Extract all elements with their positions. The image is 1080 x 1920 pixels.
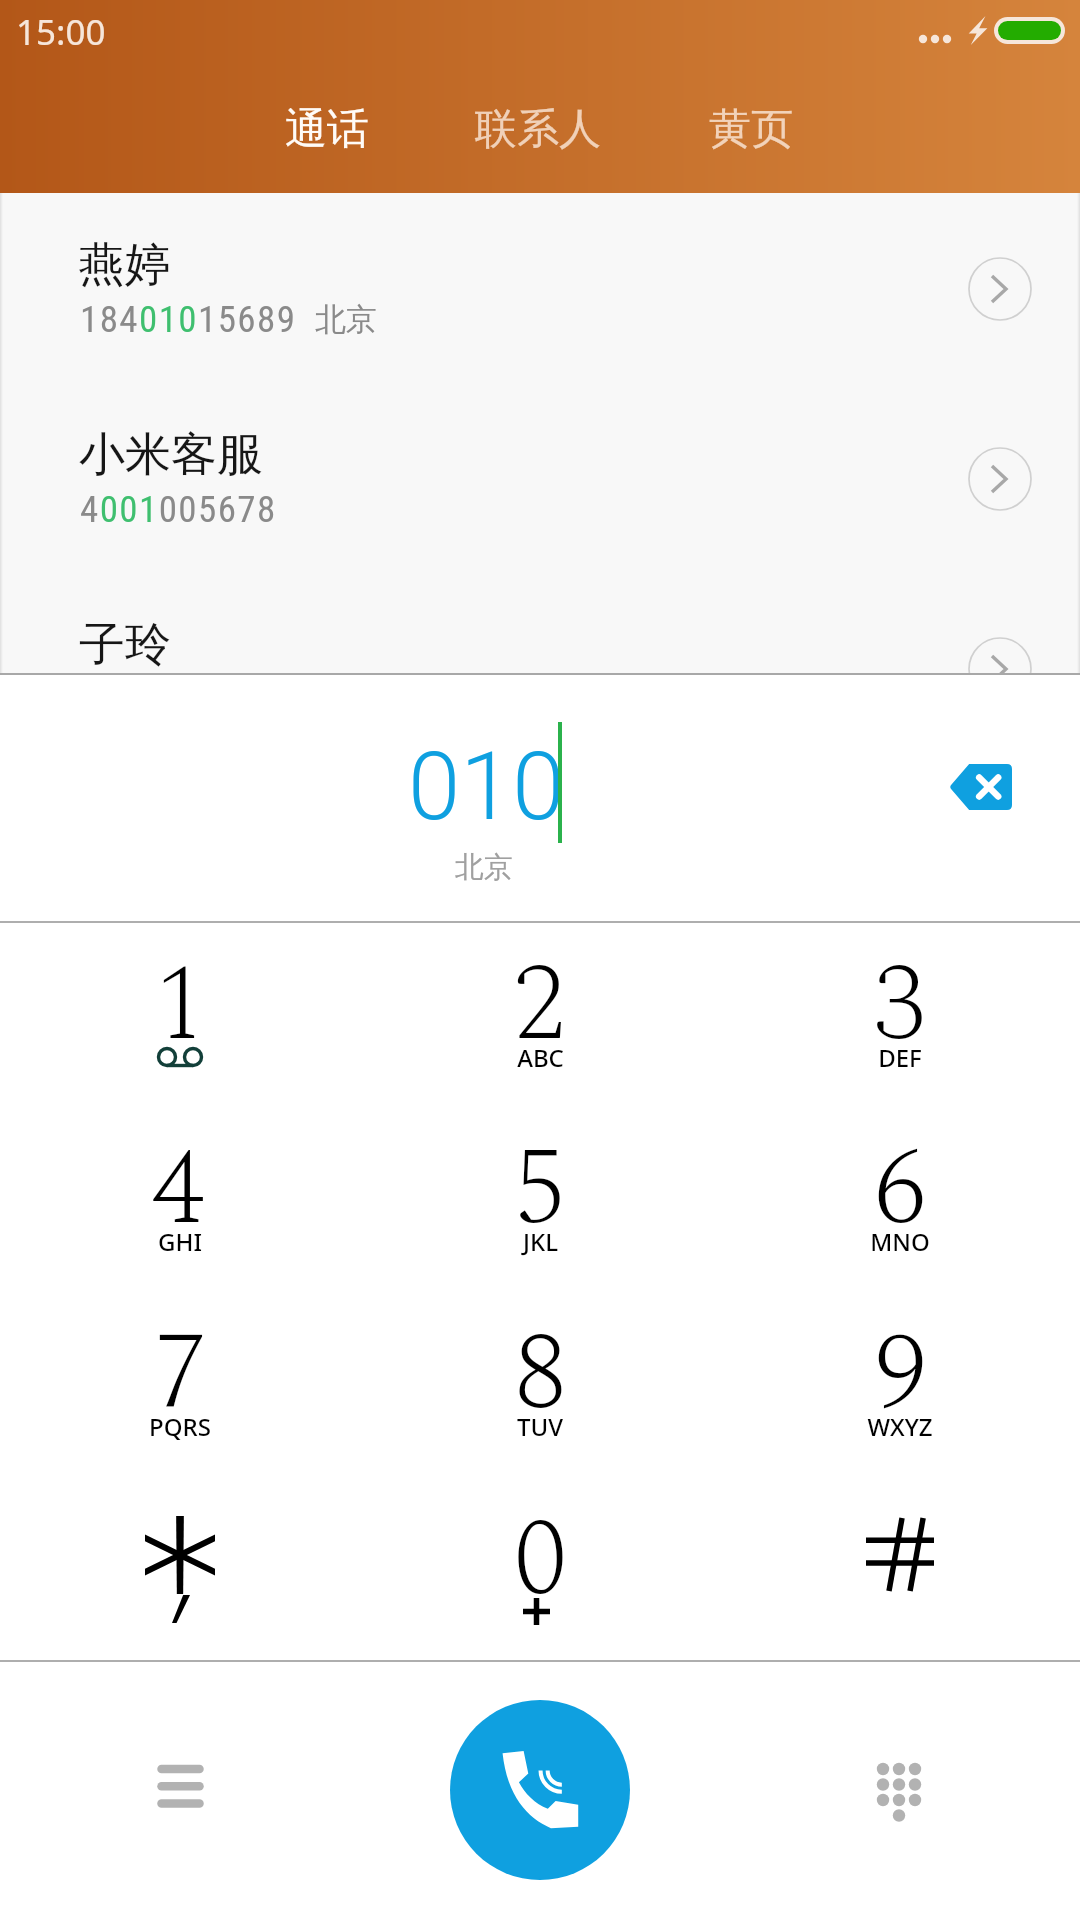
staticText: 黄页: [709, 103, 793, 156]
staticText: 4: [153, 1107, 208, 1262]
staticText: 7: [153, 1292, 208, 1447]
button[interactable]: Key 6: [720, 1091, 1080, 1276]
staticText: ABC: [517, 1041, 564, 1074]
button[interactable]: Key #: [720, 1462, 1080, 1647]
staticText: PQRS: [149, 1410, 211, 1443]
staticText: 4001005678: [80, 488, 277, 531]
button[interactable]: Key 2: [360, 907, 720, 1092]
button[interactable]: Key *: [0, 1462, 360, 1647]
staticText: DEF: [878, 1041, 922, 1074]
staticText: 子玲: [79, 616, 171, 674]
button[interactable]: Key 9: [720, 1276, 1080, 1461]
staticText: 6: [873, 1107, 928, 1262]
staticText: 小米客服: [79, 426, 263, 484]
button[interactable]: Delete: [919, 742, 1042, 832]
button[interactable]: Call log: [135, 1745, 227, 1827]
button[interactable]: Contact details: [968, 447, 1032, 511]
button[interactable]: Key 8: [360, 1276, 720, 1461]
button[interactable]: Key 7: [0, 1276, 360, 1461]
staticText: 燕婷: [79, 236, 171, 294]
button[interactable]: Key 5: [360, 1091, 720, 1276]
button[interactable]: Key 1: [0, 907, 360, 1092]
button[interactable]: Dialpad: [853, 1745, 945, 1827]
staticText: 010: [408, 732, 565, 842]
button[interactable]: 黄页: [679, 84, 823, 174]
button[interactable]: 联系人: [445, 84, 631, 174]
staticText: 2: [513, 923, 568, 1078]
staticText: 15:00: [16, 8, 106, 56]
staticText: 联系人: [475, 103, 601, 156]
staticText: TUV: [517, 1410, 563, 1443]
staticText: 8: [513, 1292, 568, 1447]
staticText: 1: [153, 923, 208, 1078]
button[interactable]: 子玲: [0, 573, 1080, 763]
staticText: 5: [513, 1107, 568, 1262]
staticText: 3: [873, 923, 928, 1078]
button[interactable]: Key 4: [0, 1091, 360, 1276]
staticText: JKL: [523, 1225, 558, 1258]
button[interactable]: 燕婷: [0, 193, 1080, 383]
button[interactable]: 通话: [255, 84, 399, 174]
staticText: 通话: [285, 103, 369, 156]
staticText: 18401015689: [80, 298, 297, 341]
staticText: GHI: [158, 1225, 202, 1258]
button[interactable]: 小米客服: [0, 383, 1080, 573]
staticText: 0: [513, 1478, 568, 1633]
button[interactable]: Contact details: [968, 257, 1032, 321]
staticText: 北京: [455, 849, 513, 886]
staticText: 北京: [315, 300, 377, 339]
button[interactable]: Key 0: [360, 1462, 720, 1647]
button[interactable]: Key 3: [720, 907, 1080, 1092]
button[interactable]: Contact details: [968, 637, 1032, 701]
staticText: WXYZ: [867, 1410, 933, 1443]
staticText: MNO: [870, 1225, 930, 1258]
button[interactable]: Call: [450, 1700, 630, 1880]
staticText: 9: [873, 1292, 928, 1447]
